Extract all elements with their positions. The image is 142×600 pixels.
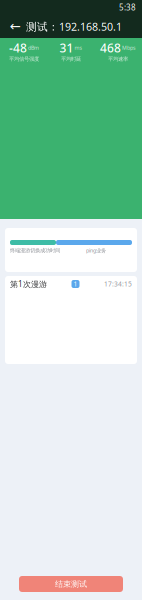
- staticText: 测试：192.168.50.1: [26, 19, 122, 34]
- staticText: 1: [73, 280, 77, 288]
- staticText: 平均速率: [108, 56, 128, 62]
- staticText: 结束测试: [55, 579, 87, 589]
- staticText: 5:38: [119, 2, 136, 13]
- staticText: ping业务: [86, 247, 106, 254]
- staticText: -48: [9, 40, 27, 56]
- button[interactable]: 结束测试: [19, 576, 123, 592]
- button[interactable]: Back: [4, 15, 26, 37]
- staticText: Mbps: [122, 44, 136, 51]
- staticText: 468: [100, 40, 121, 56]
- staticText: dBm: [28, 44, 39, 51]
- staticText: ms: [74, 44, 82, 51]
- staticText: 17:34:15: [104, 280, 132, 288]
- staticText: 第1次漫游: [10, 279, 47, 289]
- staticText: 31: [59, 40, 73, 56]
- staticText: ←: [9, 19, 20, 34]
- staticText: 终端漫游切换成功时间: [10, 247, 60, 254]
- staticText: 平均时延: [61, 56, 81, 62]
- staticText: 平均信号强度: [9, 56, 39, 62]
